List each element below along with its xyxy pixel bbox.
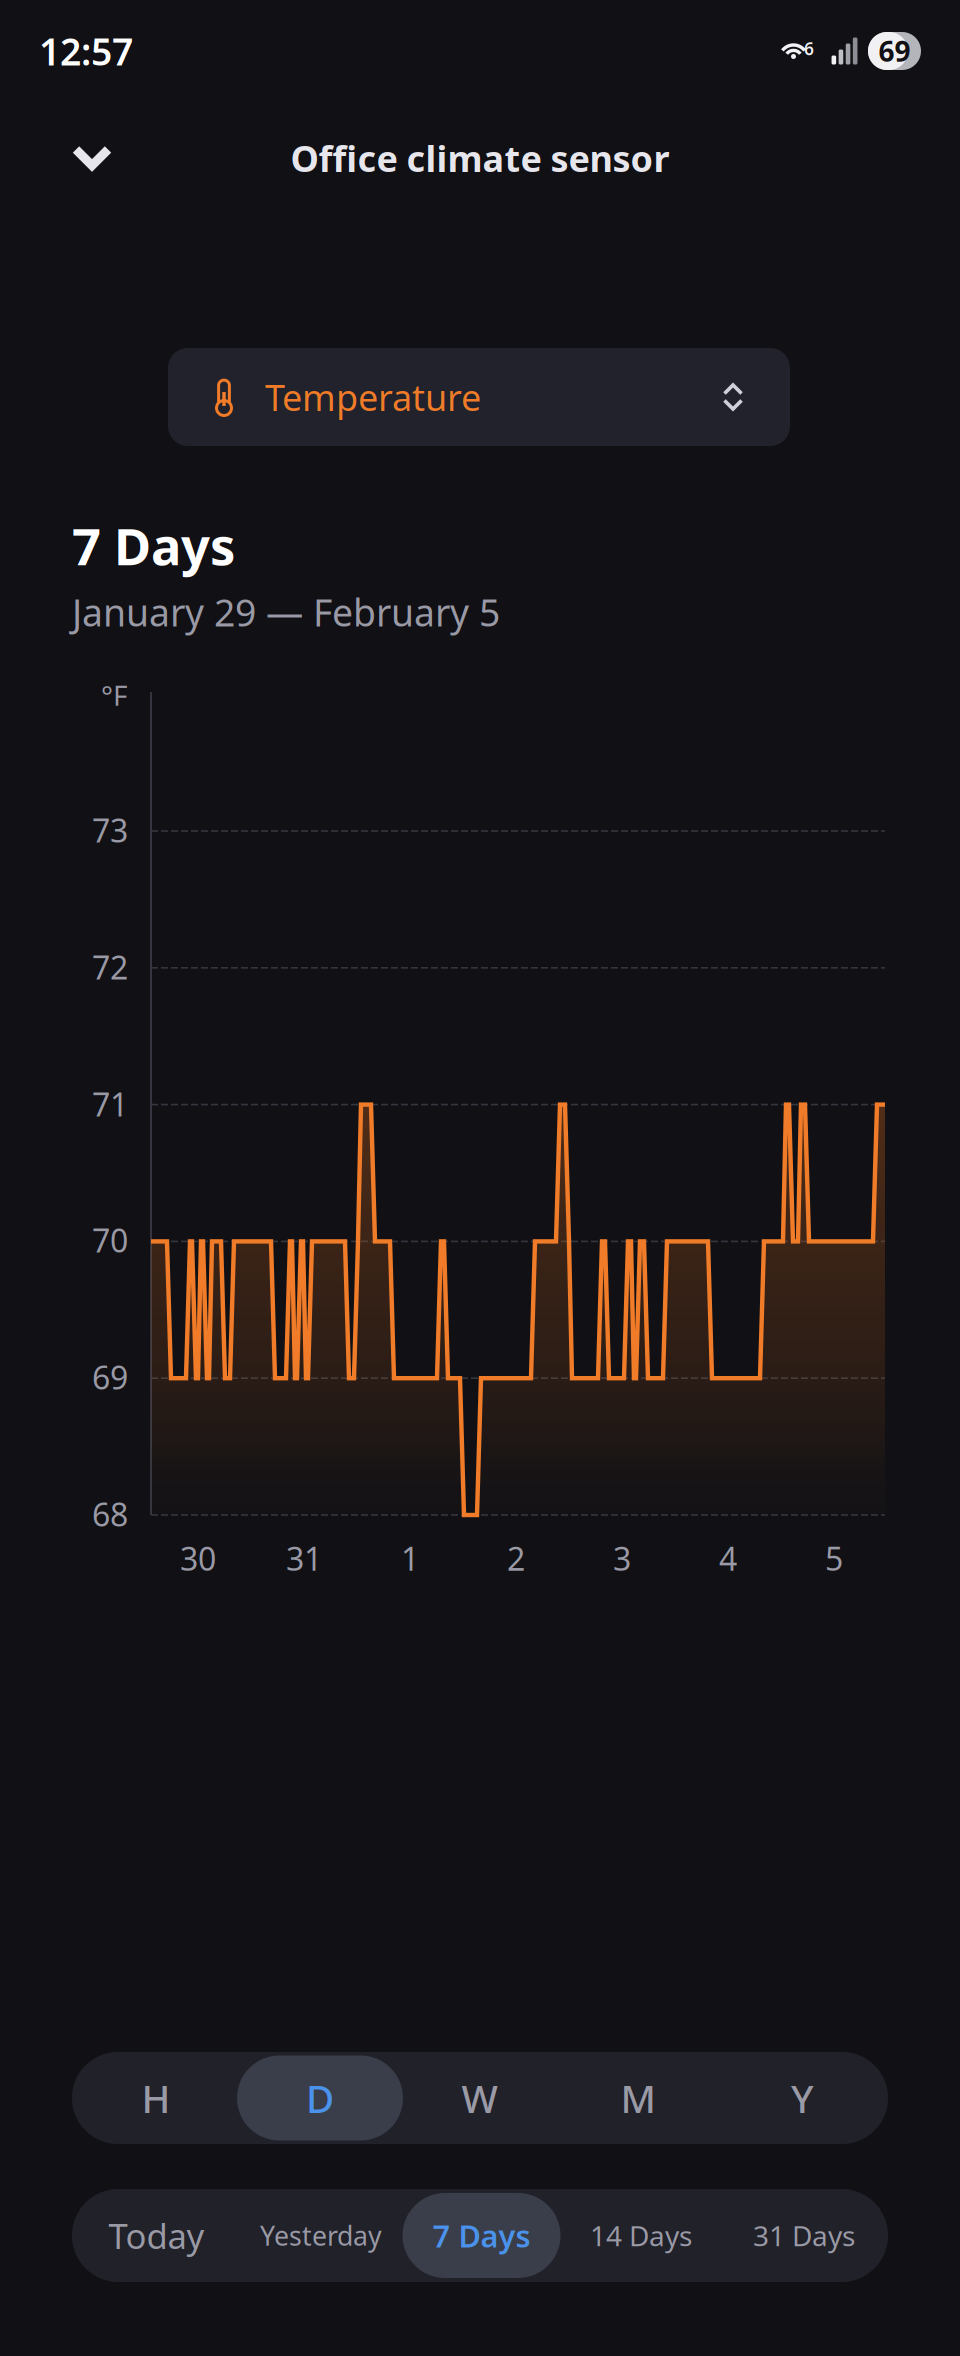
staticText: Today <box>108 2212 204 2258</box>
staticText: M <box>620 2072 655 2124</box>
staticText: 31 Days <box>753 2217 855 2254</box>
staticText: 1 <box>401 1537 419 1579</box>
button[interactable]: 14 Days <box>562 2189 720 2281</box>
button[interactable]: Collapse <box>44 110 140 206</box>
staticText: 31 <box>286 1537 322 1579</box>
button[interactable]: D <box>240 2052 400 2144</box>
staticText: Office climate sensor <box>290 134 669 182</box>
staticText: 6 <box>804 37 814 60</box>
button[interactable]: W <box>400 2052 559 2144</box>
button[interactable]: H <box>72 2052 240 2144</box>
staticText: 73 <box>92 809 128 851</box>
staticText: 2 <box>507 1537 525 1579</box>
staticText: D <box>306 2072 334 2124</box>
button[interactable]: 31 Days <box>720 2189 888 2281</box>
staticText: 7 Days <box>432 2215 530 2256</box>
staticText: 68 <box>92 1493 128 1535</box>
button[interactable]: 7 Days <box>401 2189 562 2281</box>
staticText: 3 <box>613 1537 631 1579</box>
staticText: Yesterday <box>260 2218 382 2253</box>
staticText: W <box>461 2072 497 2124</box>
staticText: 70 <box>92 1219 128 1261</box>
staticText: 72 <box>92 946 128 988</box>
button[interactable]: M <box>559 2052 717 2144</box>
staticText: 71 <box>92 1083 128 1125</box>
staticText: Temperature <box>265 373 481 421</box>
button[interactable]: Y <box>717 2052 888 2144</box>
staticText: H <box>141 2072 170 2124</box>
staticText: January 29 — February 5 <box>72 587 500 637</box>
staticText: °F <box>101 676 128 714</box>
staticText: Y <box>791 2072 814 2124</box>
staticText: 12:57 <box>39 26 133 76</box>
button[interactable]: Today <box>72 2189 241 2281</box>
staticText: 69 <box>878 32 910 70</box>
button[interactable]: Yesterday <box>241 2189 401 2281</box>
button[interactable]: Temperature <box>168 348 790 446</box>
staticText: 14 Days <box>590 2217 692 2254</box>
staticText: 69 <box>92 1356 128 1398</box>
staticText: 30 <box>180 1537 216 1579</box>
staticText: 7 Days <box>72 512 235 579</box>
staticText: 5 <box>825 1537 843 1579</box>
staticText: 4 <box>719 1537 737 1579</box>
